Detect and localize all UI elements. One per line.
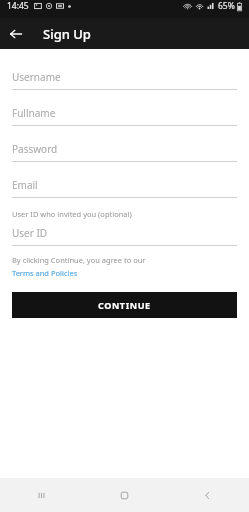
staticText: User ID who invited you (optional)	[12, 209, 132, 219]
button[interactable]: Email	[12, 178, 237, 198]
staticText: Terms and Policies	[12, 268, 78, 278]
button[interactable]: CONTINUE	[12, 292, 237, 318]
staticText: Email	[12, 178, 38, 192]
button[interactable]: Password	[12, 142, 237, 162]
staticText: 65%	[218, 0, 235, 12]
staticText: By clicking Continue, you agree to our	[12, 255, 146, 265]
button[interactable]: Terms and Policies	[12, 268, 78, 278]
button[interactable]: Recents	[0, 478, 83, 512]
button[interactable]: User ID	[12, 226, 237, 246]
staticText: 14:45	[7, 0, 29, 12]
staticText: Password	[12, 142, 58, 156]
button[interactable]: Back	[0, 18, 31, 49]
staticText: Sign Up	[43, 25, 91, 43]
button[interactable]: Home	[83, 478, 166, 512]
staticText: User ID	[12, 226, 48, 240]
button[interactable]: Fullname	[12, 106, 237, 126]
staticText: Fullname	[12, 106, 56, 120]
button[interactable]: Back	[166, 478, 249, 512]
staticText: Username	[12, 70, 61, 84]
button[interactable]: Username	[12, 70, 237, 90]
staticText: CONTINUE	[98, 299, 151, 311]
